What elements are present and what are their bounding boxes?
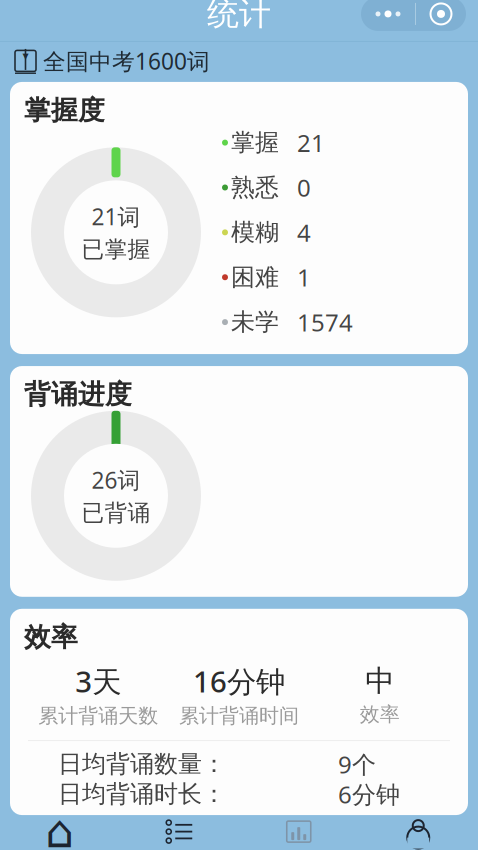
button[interactable]: 统计: [239, 815, 358, 850]
staticText: 熟悉: [231, 173, 279, 202]
staticText: 中: [365, 663, 394, 699]
button[interactable]: ⌂: [0, 815, 119, 850]
button[interactable]: 单词本: [119, 815, 239, 850]
staticText: 日均背诵时长：: [58, 779, 226, 809]
staticText: 模糊: [231, 218, 279, 247]
staticText: 21: [297, 127, 325, 159]
staticText: 背诵进度: [24, 378, 132, 411]
staticText: 6分钟: [338, 778, 400, 810]
staticText: 26词: [91, 465, 140, 495]
staticText: 9个: [338, 748, 376, 780]
staticText: 1574: [297, 306, 353, 338]
staticText: 已掌握: [81, 235, 150, 263]
staticText: ⌂: [45, 806, 74, 850]
staticText: 已背诵: [81, 499, 150, 527]
staticText: 全国中考1600词: [43, 46, 210, 76]
staticText: 效率: [360, 702, 400, 727]
staticText: 未学: [231, 307, 279, 337]
staticText: 21词: [91, 201, 140, 231]
staticText: 困难: [231, 262, 279, 292]
staticText: 个人中心: [380, 849, 456, 850]
staticText: 16分钟: [193, 662, 285, 701]
staticText: 0: [297, 172, 311, 203]
staticText: 累计背诵时间: [179, 703, 299, 728]
staticText: 3天: [75, 662, 121, 701]
staticText: 日均背诵数量：: [58, 749, 226, 779]
button[interactable]: More and Close: [361, 0, 466, 31]
staticText: 统计: [207, 0, 271, 34]
staticText: 掌握度: [24, 94, 105, 127]
staticText: ▼: [22, 51, 28, 60]
staticText: 4: [297, 216, 311, 248]
staticText: 效率: [24, 621, 78, 654]
staticText: 累计背诵天数: [38, 703, 158, 728]
staticText: 1: [297, 261, 311, 293]
staticText: 掌握: [231, 128, 279, 157]
button[interactable]: 个人中心: [358, 815, 478, 850]
